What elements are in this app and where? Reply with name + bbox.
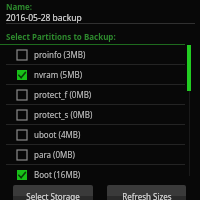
button[interactable]: Refresh Sizes [107, 185, 186, 200]
button[interactable]: protect_f (0MB) [0, 85, 200, 104]
staticText: 2016-05-28 backup [6, 12, 82, 24]
button[interactable]: Boot (16MB) [0, 165, 200, 184]
button[interactable]: Select Storage [13, 185, 93, 200]
staticText: Boot (16MB) [34, 169, 81, 180]
staticText: uboot (4MB) [34, 129, 81, 140]
staticText: Refresh Sizes [122, 191, 172, 200]
staticText: Select Partitions to Backup: [6, 31, 116, 42]
button[interactable]: para (0MB) [0, 145, 200, 164]
staticText: proinfo (3MB) [34, 49, 86, 60]
staticText: protect_f (0MB) [34, 89, 92, 100]
staticText: protect_s (0MB) [34, 109, 93, 120]
button[interactable]: uboot (4MB) [0, 125, 200, 144]
staticText: Select Storage [26, 191, 80, 200]
button[interactable]: nvram (5MB) [0, 65, 200, 84]
staticText: nvram (5MB) [34, 69, 83, 80]
staticText: para (0MB) [34, 149, 75, 160]
button[interactable]: protect_s (0MB) [0, 105, 200, 124]
staticText: Name: [6, 1, 33, 12]
button[interactable]: proinfo (3MB) [0, 45, 200, 64]
